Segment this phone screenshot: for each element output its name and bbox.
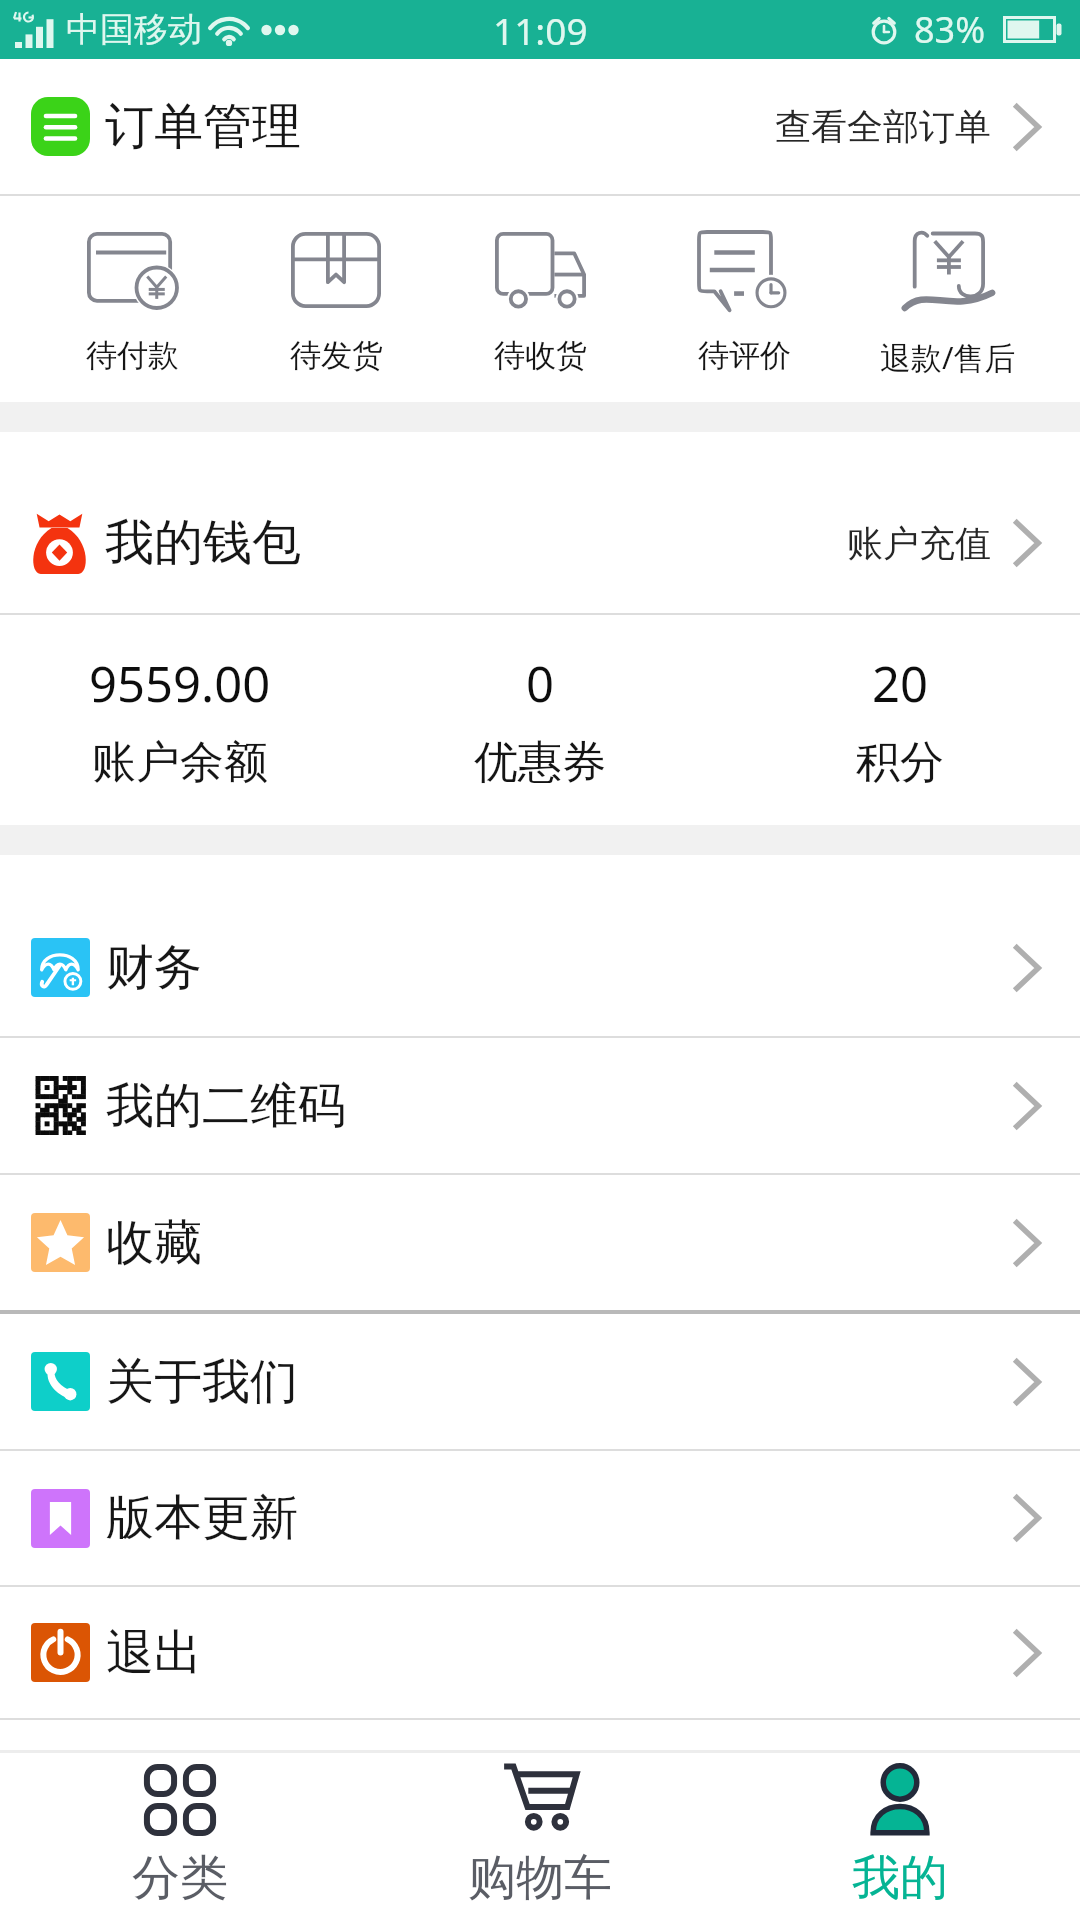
staticText: 财务 [106, 938, 202, 998]
staticText: 中国移动 [66, 8, 202, 51]
button[interactable]: 0 [360, 615, 720, 825]
staticText: 待发货 [290, 336, 383, 375]
button[interactable]: 20 [720, 615, 1080, 825]
staticText: 优惠券 [474, 735, 606, 790]
button[interactable]: 待评价 [642, 196, 846, 402]
staticText: 我的 [852, 1848, 948, 1908]
button[interactable]: 分类 [0, 1753, 360, 1920]
staticText: 版本更新 [106, 1488, 298, 1548]
button[interactable]: 财务 [0, 855, 1080, 1036]
staticText: 待收货 [494, 336, 587, 375]
staticText: 退款/售后 [880, 336, 1016, 378]
button[interactable]: 账户充值 [847, 473, 1041, 613]
staticText: 我的二维码 [106, 1076, 346, 1136]
button[interactable]: 我的钱包 [0, 432, 1080, 613]
staticText: 待评价 [698, 336, 791, 375]
button[interactable]: 待收货 [438, 196, 642, 402]
button[interactable]: 订单管理 [0, 59, 1080, 194]
staticText: 订单管理 [105, 96, 301, 158]
staticText: 11:09 [493, 5, 588, 55]
button[interactable]: 待发货 [234, 196, 438, 402]
staticText: 关于我们 [106, 1352, 298, 1412]
staticText: 购物车 [468, 1848, 612, 1908]
staticText: 9559.00 [89, 650, 271, 717]
staticText: 账户余额 [92, 735, 268, 790]
staticText: 0 [526, 650, 555, 717]
button[interactable]: 查看全部订单 [775, 59, 1041, 194]
button[interactable]: 收藏 [0, 1175, 1080, 1310]
button[interactable]: 退款/售后 [846, 196, 1050, 402]
staticText: 待付款 [86, 336, 179, 375]
staticText: 我的钱包 [105, 512, 301, 574]
staticText: 查看全部订单 [775, 104, 991, 149]
other: Top up account [1014, 520, 1041, 566]
button[interactable]: 购物车 [360, 1753, 720, 1920]
button[interactable]: 我的 [720, 1753, 1080, 1920]
staticText: 分类 [132, 1848, 228, 1908]
staticText: 退出 [106, 1623, 202, 1683]
other: View all orders [1014, 104, 1041, 150]
button[interactable]: 待付款 [30, 196, 234, 402]
staticText: 账户充值 [847, 521, 991, 566]
button[interactable]: 9559.00 [0, 615, 360, 825]
button[interactable]: 退出 [0, 1587, 1080, 1718]
button[interactable]: 关于我们 [0, 1314, 1080, 1449]
staticText: 收藏 [106, 1213, 202, 1273]
staticText: 积分 [856, 735, 944, 790]
staticText: 83% [914, 5, 986, 54]
button[interactable]: 版本更新 [0, 1451, 1080, 1585]
button[interactable]: 我的二维码 [0, 1038, 1080, 1173]
staticText: 20 [872, 650, 929, 717]
